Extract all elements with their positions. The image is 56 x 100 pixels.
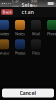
staticText: Files <box>32 50 40 56</box>
button[interactable]: Files <box>29 39 42 56</box>
button[interactable]: Back <box>1 9 13 15</box>
button[interactable]: Notes <box>13 20 26 36</box>
staticText: Twitter <box>0 31 10 36</box>
staticText: Carrier <box>12 0 20 9</box>
button[interactable]: Twitter <box>0 20 10 36</box>
button[interactable]: Photos <box>13 39 26 56</box>
staticText: Cancel <box>19 89 36 97</box>
button[interactable]: Mail <box>29 20 42 36</box>
staticText: Back <box>2 9 11 15</box>
staticText: 9:41 AM <box>30 0 37 9</box>
button[interactable]: Cancel <box>2 88 54 97</box>
staticText: Music <box>0 50 9 56</box>
staticText: Notes <box>15 31 25 36</box>
staticText: Select an app <box>21 1 34 23</box>
staticText: Phone <box>47 31 56 36</box>
button[interactable]: Phone <box>45 20 56 36</box>
button[interactable]: Music <box>0 39 10 56</box>
staticText: Mail <box>32 31 40 36</box>
staticText: Photos <box>14 50 25 56</box>
